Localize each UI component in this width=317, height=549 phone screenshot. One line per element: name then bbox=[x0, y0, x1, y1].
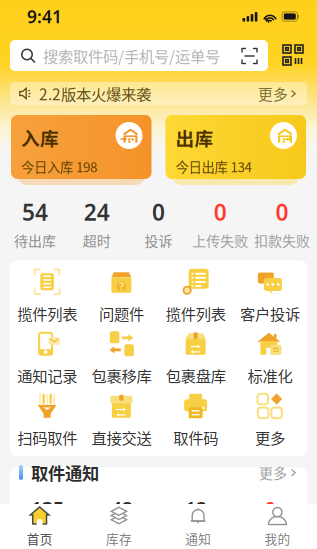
staticText: 24 bbox=[84, 197, 110, 227]
staticText: 入库 bbox=[21, 124, 59, 151]
staticText: 今日入库 198 bbox=[21, 157, 97, 176]
button[interactable]: 扫一扫 bbox=[268, 45, 306, 66]
button[interactable]: 取件码 bbox=[158, 389, 233, 451]
staticText: 投诉 bbox=[144, 230, 172, 250]
staticText: 搜索取件码/手机号/运单号 bbox=[43, 44, 220, 67]
button[interactable]: 包裹移库 bbox=[84, 327, 158, 389]
button[interactable]: 库存 bbox=[79, 504, 158, 548]
button[interactable]: 通知记录 bbox=[10, 327, 84, 389]
staticText: 待取件 bbox=[176, 525, 215, 544]
staticText: 库存 bbox=[106, 529, 132, 548]
staticText: 更多 bbox=[258, 83, 288, 104]
button[interactable]: 扫码取件 bbox=[10, 389, 84, 451]
button[interactable]: 入库 bbox=[11, 115, 151, 185]
staticText: 扫码取件 bbox=[17, 426, 77, 448]
staticText: 更多 bbox=[259, 462, 287, 483]
button[interactable]: 更多 bbox=[259, 462, 297, 483]
staticText: 12 bbox=[185, 495, 207, 522]
staticText: 待取件 bbox=[28, 525, 67, 544]
button[interactable]: 0 bbox=[189, 197, 251, 250]
staticText: 0 bbox=[152, 197, 165, 227]
staticText: 通知 bbox=[185, 529, 211, 548]
staticText: 揽件列表 bbox=[17, 302, 77, 324]
button[interactable]: 揽件列表 bbox=[10, 265, 84, 327]
button[interactable]: 出库 bbox=[165, 115, 306, 185]
staticText: 取件通知 bbox=[31, 460, 99, 485]
staticText: 48 bbox=[110, 495, 132, 522]
button[interactable]: ? bbox=[84, 265, 158, 327]
staticText: 出库 bbox=[175, 124, 213, 151]
staticText: 客户投诉 bbox=[240, 302, 300, 324]
button[interactable]: 我的 bbox=[238, 504, 317, 548]
button[interactable]: 搜索取件码/手机号/运单号 bbox=[10, 40, 268, 71]
button[interactable]: 2.2版本火爆来袭 bbox=[10, 82, 307, 105]
staticText: 取件码 bbox=[173, 426, 218, 448]
staticText: 扣款失败 bbox=[254, 230, 310, 250]
staticText: 9:41 bbox=[27, 5, 62, 28]
button[interactable]: 客户投诉 bbox=[233, 265, 307, 327]
button[interactable]: 0 bbox=[251, 197, 313, 250]
staticText: 包裹移库 bbox=[91, 364, 151, 386]
staticText: ? bbox=[119, 279, 124, 293]
button[interactable]: 54 bbox=[4, 197, 66, 250]
button[interactable]: 揽件列表 bbox=[158, 265, 233, 327]
staticText: 我的 bbox=[264, 529, 290, 548]
staticText: 问题件 bbox=[99, 302, 144, 324]
staticText: 0 bbox=[214, 197, 227, 227]
button[interactable]: 标准化 bbox=[233, 327, 307, 389]
button[interactable]: 直接交送 bbox=[84, 389, 158, 451]
staticText: 直接交送 bbox=[91, 426, 151, 448]
staticText: 54 bbox=[22, 197, 48, 227]
staticText: 更多 bbox=[255, 426, 285, 448]
staticText: 2.2版本火爆来袭 bbox=[39, 82, 151, 105]
staticText: 包裹盘库 bbox=[166, 364, 226, 386]
staticText: 超时 bbox=[83, 230, 111, 250]
button[interactable]: 首页 bbox=[0, 504, 79, 548]
staticText: 首页 bbox=[27, 529, 53, 548]
staticText: 135 bbox=[31, 495, 64, 522]
button[interactable]: 更多 bbox=[233, 389, 307, 451]
staticText: 0 bbox=[276, 197, 289, 227]
staticText: 待出库 bbox=[14, 230, 56, 250]
staticText: 待取件 bbox=[250, 525, 289, 544]
button[interactable]: 通知 bbox=[158, 504, 238, 548]
staticText: 待取件 bbox=[102, 525, 141, 544]
staticText: 今日出库 134 bbox=[175, 157, 251, 176]
button[interactable]: 包裹盘库 bbox=[158, 327, 233, 389]
staticText: 揽件列表 bbox=[166, 302, 226, 324]
button[interactable]: 0 bbox=[128, 197, 189, 250]
staticText: 通知记录 bbox=[17, 364, 77, 386]
staticText: 标准化 bbox=[247, 364, 292, 386]
staticText: 0 bbox=[264, 495, 275, 522]
staticText: 上传失败 bbox=[192, 230, 248, 250]
button[interactable]: 24 bbox=[66, 197, 128, 250]
